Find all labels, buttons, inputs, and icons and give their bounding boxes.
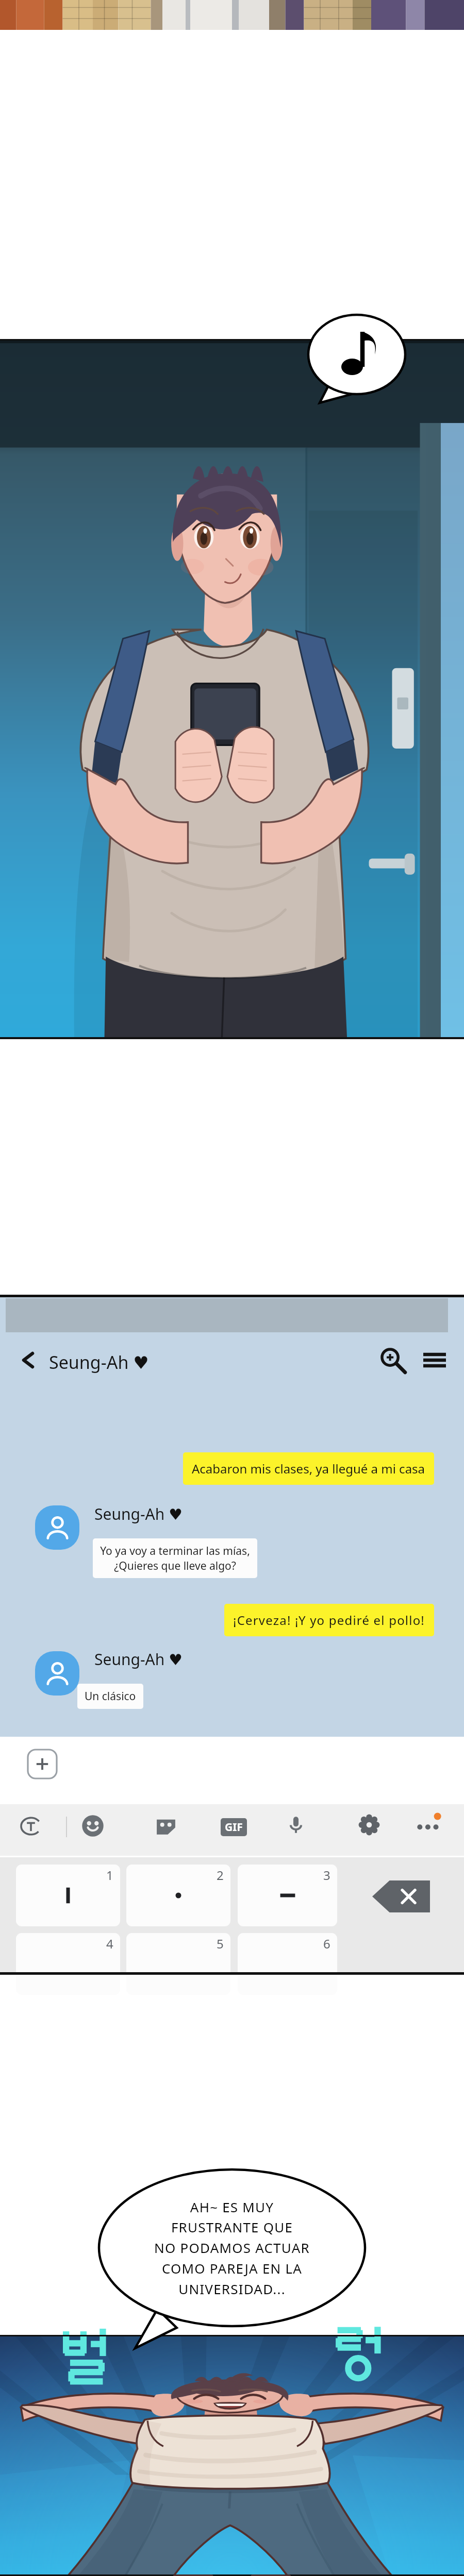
staticText: 1	[106, 1867, 113, 1884]
staticText: 2	[217, 1867, 224, 1884]
staticText: Un clásico	[85, 1689, 136, 1704]
button[interactable]: 2	[126, 1865, 230, 1926]
staticText: GIF	[225, 1820, 243, 1835]
staticText: AH~ ES MUY FRUSTRANTE QUE NO PODAMOS ACT…	[154, 2198, 310, 2298]
button[interactable]: Yo ya voy a terminar las mías, ¿Quieres …	[93, 1538, 257, 1578]
button[interactable]: 3	[238, 1865, 337, 1926]
staticText: ¡Cerveza! ¡Y yo pediré el pollo!	[233, 1612, 425, 1629]
button[interactable]: 1	[16, 1865, 120, 1926]
staticText: Acabaron mis clases, ya llegué a mi casa	[192, 1460, 425, 1477]
button[interactable]: Back	[15, 1347, 41, 1373]
button[interactable]: Search	[379, 1346, 407, 1374]
button[interactable]: 4	[16, 1933, 120, 1995]
button[interactable]: Profile picture	[35, 1505, 79, 1550]
staticText: 4	[106, 1935, 113, 1952]
button[interactable]: Settings	[355, 1810, 384, 1839]
button[interactable]: ¡Cerveza! ¡Y yo pediré el pollo!	[224, 1604, 434, 1636]
button[interactable]: Seung-Ah ♥	[94, 1503, 183, 1524]
staticText: 3	[323, 1867, 330, 1884]
button[interactable]: Profile picture	[35, 1651, 79, 1696]
staticText: Yo ya voy a terminar las mías, ¿Quieres …	[100, 1544, 250, 1573]
staticText: 6	[323, 1935, 330, 1952]
button[interactable]: Emoji	[78, 1811, 107, 1840]
button[interactable]: Seung-Ah ♥	[49, 1350, 149, 1374]
button[interactable]: More options	[416, 1810, 442, 1837]
button[interactable]: Voice input	[281, 1810, 310, 1839]
button[interactable]: GIF	[221, 1818, 247, 1836]
button[interactable]: Enter	[361, 1943, 438, 1974]
button[interactable]: Backspace	[372, 1880, 430, 1912]
button[interactable]: Add attachment	[28, 1750, 57, 1778]
button[interactable]: Seung-Ah ♥	[94, 1649, 183, 1670]
button[interactable]: 5	[126, 1933, 230, 1995]
button[interactable]: Stickers	[152, 1811, 180, 1840]
staticText: 5	[217, 1935, 224, 1952]
button[interactable]: Acabaron mis clases, ya llegué a mi casa	[183, 1452, 434, 1485]
button[interactable]: 6	[238, 1933, 337, 1995]
button[interactable]: Un clásico	[77, 1684, 143, 1709]
button[interactable]: Translate	[16, 1811, 45, 1840]
button[interactable]: Menu	[422, 1347, 448, 1373]
